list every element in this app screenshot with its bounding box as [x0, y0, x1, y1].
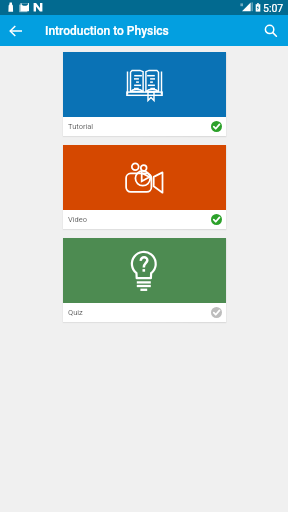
- button[interactable]: Search: [255, 15, 286, 46]
- staticText: Tutorial: [68, 122, 94, 131]
- staticText: Quiz: [68, 308, 83, 317]
- staticText: Video: [68, 215, 88, 224]
- staticText: 5:07: [263, 2, 284, 14]
- button[interactable]: Video: [63, 145, 226, 229]
- staticText: Introduction to Physics: [45, 24, 169, 38]
- button[interactable]: Tutorial: [63, 52, 226, 136]
- button[interactable]: Quiz: [63, 238, 226, 322]
- button[interactable]: Back: [0, 15, 31, 46]
